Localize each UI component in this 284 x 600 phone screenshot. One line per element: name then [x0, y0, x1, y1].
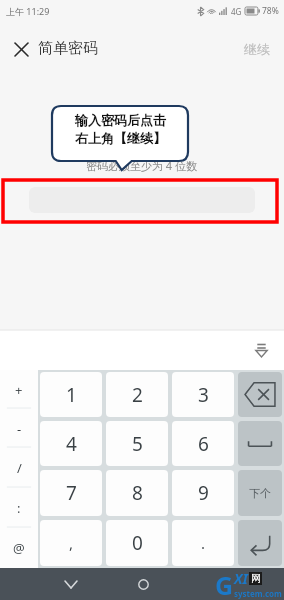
staticText: -	[17, 420, 22, 438]
button[interactable]: /	[0, 448, 38, 488]
staticText: ,	[69, 533, 74, 553]
button[interactable]: 5	[106, 421, 168, 466]
staticText: system.com	[234, 588, 282, 599]
staticText: 输入密码后点击	[75, 112, 166, 128]
button[interactable]: 继续	[238, 35, 276, 63]
button[interactable]: 4	[40, 421, 102, 466]
button[interactable]: 6	[172, 421, 234, 466]
staticText: 6	[198, 431, 209, 457]
button[interactable]: -	[0, 409, 38, 448]
button[interactable]: Hide keyboard	[246, 335, 276, 365]
staticText: .	[201, 533, 206, 553]
staticText: 2	[132, 382, 143, 408]
staticText: 右上角【继续】	[75, 130, 166, 146]
staticText: 8	[132, 480, 143, 506]
staticText: 密码必须至少为 4 位数	[86, 158, 198, 173]
staticText: 78%	[262, 5, 279, 17]
staticText: 0	[132, 530, 143, 556]
button[interactable]: 下个	[238, 470, 282, 516]
staticText: 5	[132, 431, 143, 457]
button[interactable]: 7	[40, 470, 102, 516]
staticText: 继续	[244, 41, 270, 57]
staticText: /	[17, 459, 22, 477]
button[interactable]: @	[0, 528, 38, 568]
button[interactable]: 1	[40, 372, 102, 417]
staticText: 下个	[249, 486, 271, 500]
staticText: 4G	[231, 6, 242, 17]
button[interactable]: Delete	[238, 372, 282, 417]
button[interactable]: +	[0, 370, 38, 409]
staticText: +	[15, 381, 23, 399]
button[interactable]: :	[0, 488, 38, 528]
staticText: 简单密码	[38, 39, 98, 58]
staticText: 上午 11:29	[6, 5, 50, 17]
button[interactable]: .	[172, 520, 234, 566]
button[interactable]: Enter	[238, 520, 282, 566]
staticText: 9	[198, 480, 209, 506]
staticText: G	[215, 568, 234, 600]
button[interactable]: 0	[106, 520, 168, 566]
button[interactable]: Space	[238, 421, 282, 466]
button[interactable]: ,	[40, 520, 102, 566]
button[interactable]: 8	[106, 470, 168, 516]
button[interactable]: 9	[172, 470, 234, 516]
staticText: @	[13, 539, 25, 557]
button[interactable]: 2	[106, 372, 168, 417]
staticText: 网	[251, 572, 261, 585]
staticText: 1	[66, 382, 77, 408]
button[interactable]: Back	[55, 568, 87, 600]
staticText: XI	[234, 569, 248, 588]
staticText: :	[17, 499, 21, 517]
staticText: 3	[198, 382, 209, 408]
staticText: 4	[66, 431, 77, 457]
button[interactable]: Close	[6, 34, 36, 64]
button[interactable]: Home	[127, 568, 159, 600]
staticText: 7	[66, 480, 77, 506]
button[interactable]: 3	[172, 372, 234, 417]
